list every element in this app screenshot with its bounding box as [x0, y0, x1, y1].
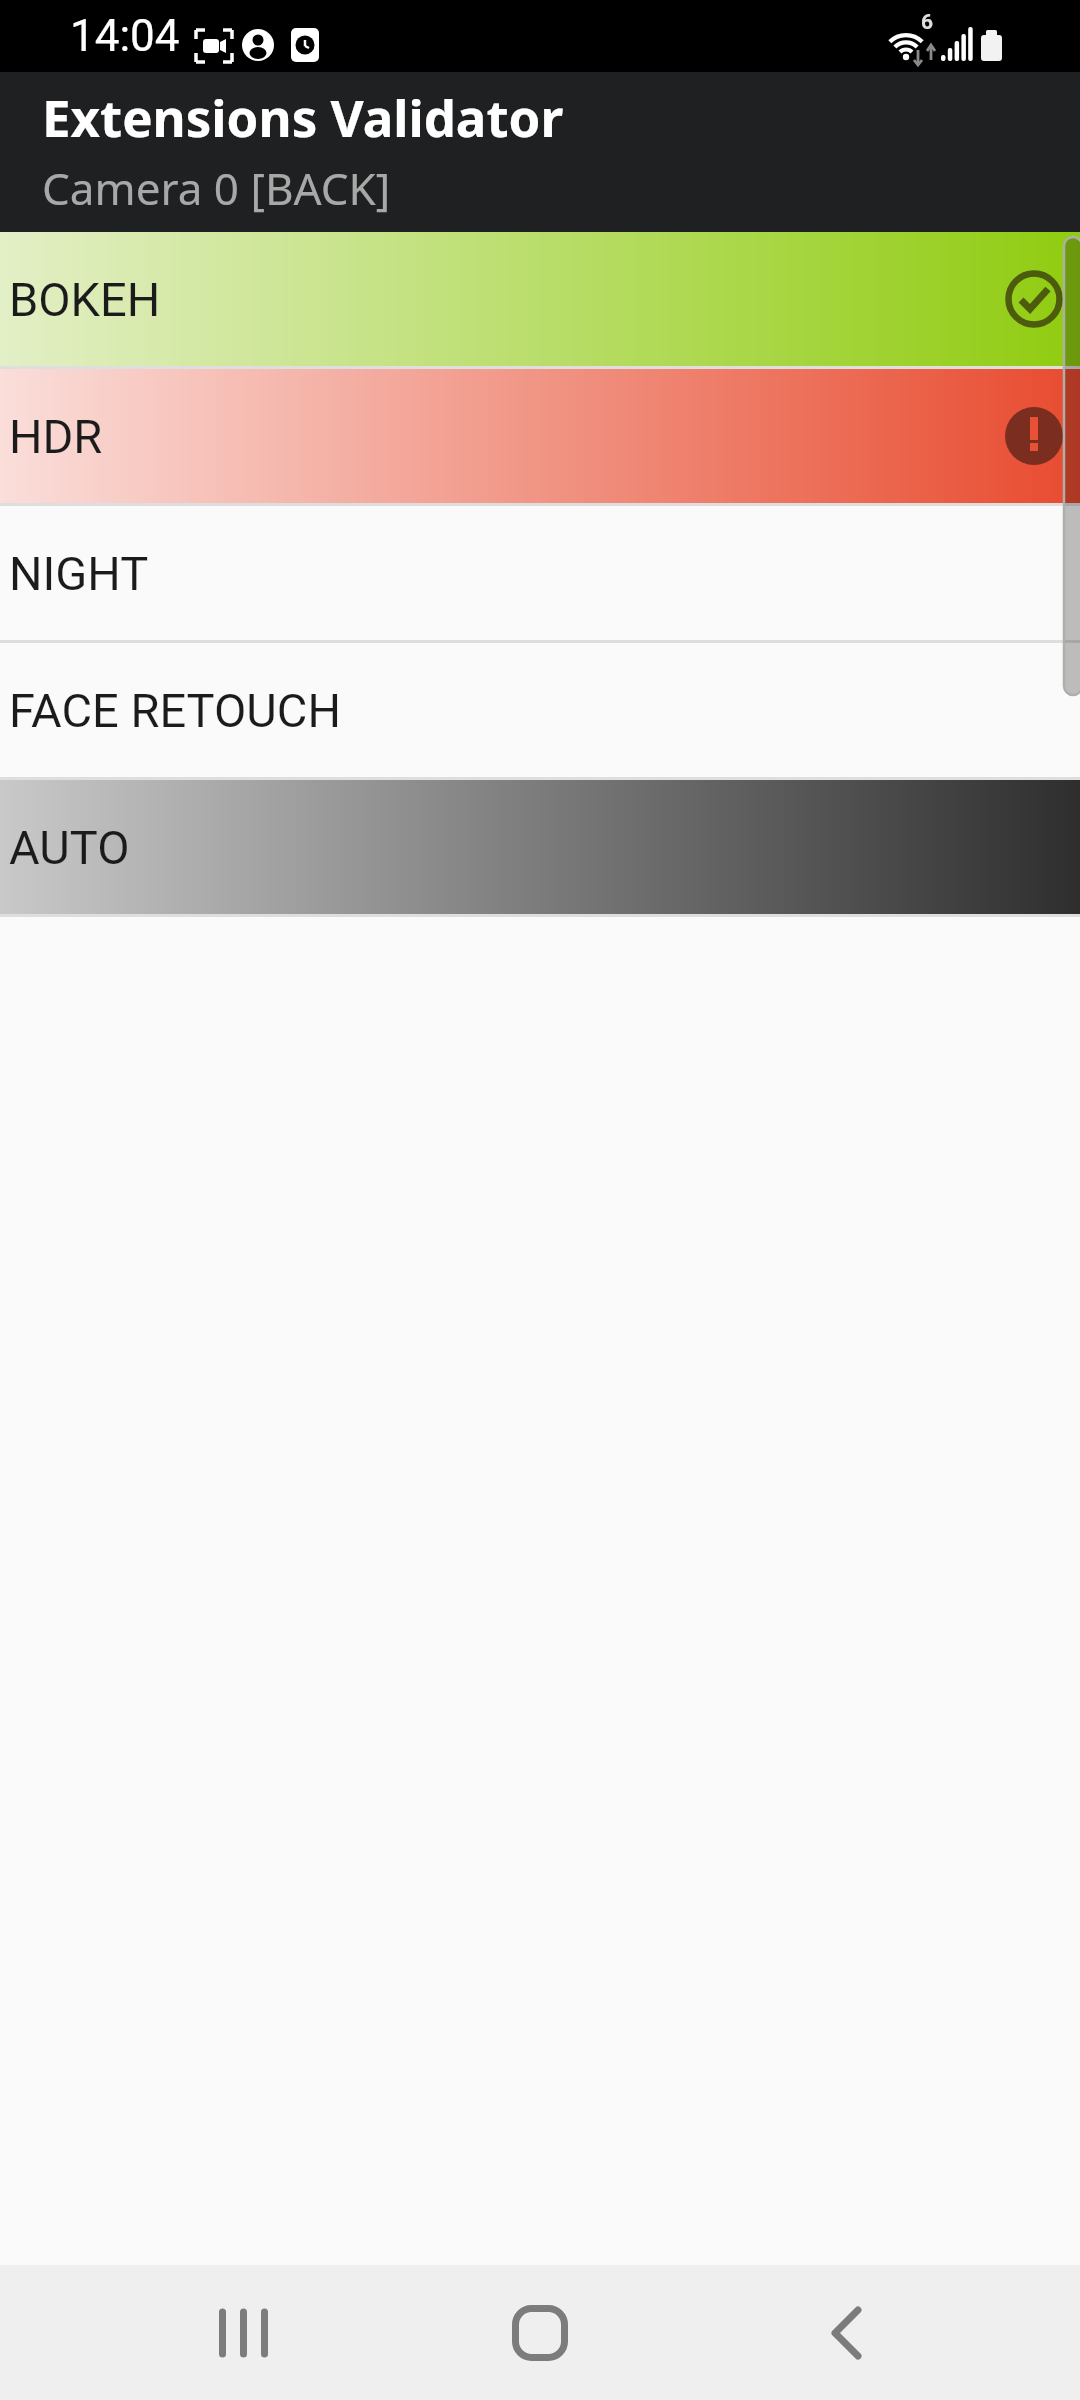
button[interactable]: HDR [0, 369, 1080, 503]
staticText: 14:04 [70, 10, 180, 62]
staticText: Camera 0 [BACK] [42, 158, 391, 218]
staticText: Extensions Validator [42, 82, 564, 151]
button[interactable]: AUTO [0, 780, 1080, 914]
button[interactable] [215, 2305, 271, 2361]
staticText: BOKEH [9, 272, 161, 327]
button[interactable] [818, 2305, 874, 2361]
button[interactable] [512, 2305, 568, 2361]
button[interactable]: BOKEH [0, 232, 1080, 366]
staticText: NIGHT [9, 546, 149, 601]
staticText: HDR [9, 409, 103, 464]
button[interactable]: FACE RETOUCH [0, 643, 1080, 777]
staticText: FACE RETOUCH [9, 683, 341, 738]
button[interactable]: NIGHT [0, 506, 1080, 640]
staticText: 6 [921, 10, 934, 35]
staticText: AUTO [9, 820, 130, 875]
